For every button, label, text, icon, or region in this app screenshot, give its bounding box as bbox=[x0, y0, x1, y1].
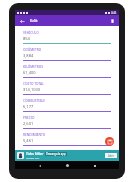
staticText: VEHÍCULO bbox=[23, 31, 39, 35]
button[interactable]: KILÓMETROS bbox=[19, 63, 115, 78]
button[interactable]: Back bbox=[36, 162, 43, 169]
button[interactable]: Delete bbox=[108, 17, 116, 25]
button[interactable]: PRECIO bbox=[19, 114, 115, 129]
button[interactable]: Abrir bbox=[105, 153, 117, 158]
staticText: 5,461 bbox=[23, 138, 34, 143]
staticText: Google Play bbox=[26, 156, 40, 159]
staticText: PRECIO bbox=[23, 116, 35, 120]
staticText: RENDIMIENTO bbox=[23, 133, 46, 137]
staticText: 2,601 bbox=[23, 121, 34, 126]
staticText: ODÓMETRO bbox=[23, 48, 42, 52]
button[interactable]: Home bbox=[64, 162, 71, 169]
button[interactable]: VEHÍCULO bbox=[19, 29, 115, 44]
staticText: Descarga la app bbox=[46, 152, 66, 156]
staticText: COMBUSTIBLE bbox=[23, 99, 46, 103]
staticText: COSTO TOTAL bbox=[23, 82, 44, 86]
staticText: $14,1030 bbox=[23, 87, 41, 92]
staticText: KILÓMETROS bbox=[23, 65, 44, 69]
button[interactable]: Recents bbox=[91, 162, 98, 169]
button[interactable]: COSTO TOTAL bbox=[19, 80, 115, 95]
button[interactable]: RENDIMIENTO bbox=[19, 131, 115, 146]
staticText: 61,400 bbox=[23, 70, 36, 75]
button[interactable]: Save bbox=[105, 137, 114, 146]
staticText: 4:46 bbox=[111, 11, 117, 15]
staticText: 3,884 bbox=[23, 53, 34, 58]
staticText: Edit bbox=[30, 18, 38, 24]
staticText: 6,177 bbox=[23, 104, 34, 109]
staticText: 854 bbox=[23, 36, 30, 41]
button[interactable]: COMBUSTIBLE bbox=[19, 97, 115, 112]
button[interactable]: Back bbox=[18, 17, 26, 25]
staticText: Video Editor bbox=[26, 152, 44, 156]
button[interactable]: ODÓMETRO bbox=[19, 46, 115, 61]
button[interactable]: Video Editor bbox=[15, 150, 119, 161]
staticText: Abrir bbox=[108, 154, 115, 158]
